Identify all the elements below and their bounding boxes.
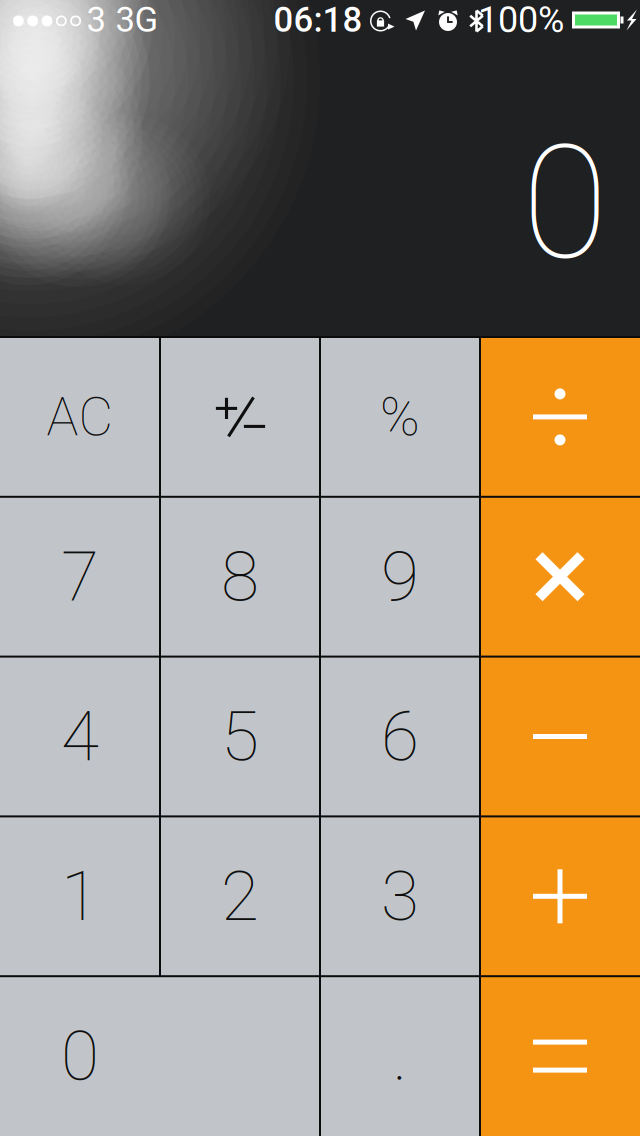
staticText: 4	[61, 696, 99, 777]
staticText: 06:18	[273, 0, 362, 40]
button[interactable]: 3	[320, 816, 480, 976]
staticText: 100%	[478, 0, 564, 41]
button[interactable]: 2	[160, 816, 320, 976]
staticText: %	[380, 386, 420, 448]
button[interactable]: 7	[0, 497, 160, 657]
staticText: 9	[381, 536, 419, 617]
button[interactable]: Multiply	[480, 497, 640, 657]
button[interactable]: %	[320, 337, 480, 497]
staticText: 7	[61, 536, 99, 617]
staticText: .	[392, 1015, 407, 1097]
button[interactable]: Toggle sign	[160, 337, 320, 497]
staticText: 0	[61, 1015, 99, 1097]
staticText: 1	[61, 856, 99, 937]
button[interactable]: Add	[480, 816, 640, 976]
button[interactable]: AC	[0, 337, 160, 497]
button[interactable]: 6	[320, 657, 480, 816]
staticText: 2	[221, 856, 259, 937]
staticText: 6	[381, 696, 419, 777]
staticText: 3	[381, 856, 419, 937]
button[interactable]: 8	[160, 497, 320, 657]
button[interactable]: Equals	[480, 976, 640, 1136]
button[interactable]: 0	[0, 976, 320, 1136]
button[interactable]: Divide	[480, 337, 640, 497]
button[interactable]: 5	[160, 657, 320, 816]
button[interactable]: 9	[320, 497, 480, 657]
staticText: 3G	[115, 0, 158, 40]
staticText: 3	[86, 0, 105, 40]
button[interactable]: 1	[0, 816, 160, 976]
button[interactable]: 4	[0, 657, 160, 816]
staticText: 0	[522, 111, 608, 295]
button[interactable]: Subtract	[480, 657, 640, 816]
button[interactable]: .	[320, 976, 480, 1136]
staticText: 5	[221, 696, 259, 777]
staticText: 8	[221, 536, 259, 617]
staticText: AC	[46, 386, 113, 448]
